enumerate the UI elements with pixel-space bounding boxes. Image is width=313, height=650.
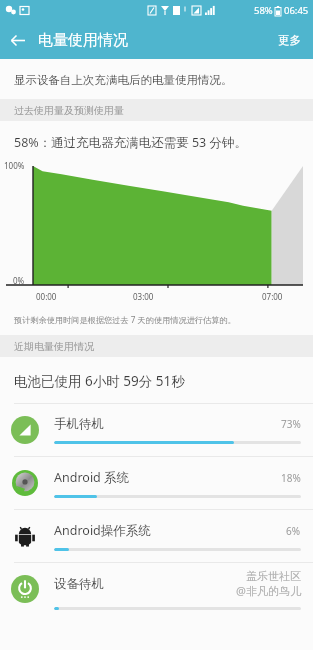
staticText: 预计剩余使用时间是根据您过去 7 天的使用情况进行估算的。 — [14, 314, 236, 325]
staticText: 0% — [13, 275, 25, 286]
staticText: 更多 — [278, 33, 301, 47]
staticText: 100% — [4, 160, 25, 171]
staticText: 58% — [254, 4, 273, 17]
staticText: Android操作系统 — [54, 522, 286, 539]
staticText: 00:00 — [36, 291, 57, 302]
staticText: 电池已使用 6小时 59分 51秒 — [14, 372, 185, 390]
button[interactable]: 手机待机 — [0, 404, 313, 456]
staticText: 设备待机 — [54, 576, 236, 592]
button[interactable]: Back — [0, 23, 34, 57]
button[interactable]: Android操作系统 — [0, 510, 313, 562]
staticText: 过去使用量及预测使用量 — [14, 104, 124, 117]
staticText: 显示设备自上次充满电后的电量使用情况。 — [14, 73, 233, 87]
button[interactable]: 设备待机 — [0, 563, 313, 615]
staticText: 07:00 — [262, 291, 283, 302]
staticText: 盖乐世社区 — [246, 569, 301, 583]
staticText: 73% — [281, 417, 301, 431]
staticText: 近期电量使用情况 — [14, 340, 94, 353]
staticText: @非凡的鸟儿 — [236, 583, 301, 598]
button[interactable]: Android 系统 — [0, 457, 313, 509]
staticText: 18% — [281, 471, 301, 485]
staticText: 电量使用情况 — [38, 31, 128, 50]
button[interactable]: 更多 — [266, 33, 313, 47]
staticText: 03:00 — [133, 291, 154, 302]
staticText: 6% — [286, 524, 301, 538]
staticText: 手机待机 — [54, 416, 281, 432]
staticText: 58%：通过充电器充满电还需要 53 分钟。 — [14, 134, 247, 151]
staticText: 06:45 — [284, 4, 309, 17]
staticText: Android 系统 — [54, 469, 281, 486]
